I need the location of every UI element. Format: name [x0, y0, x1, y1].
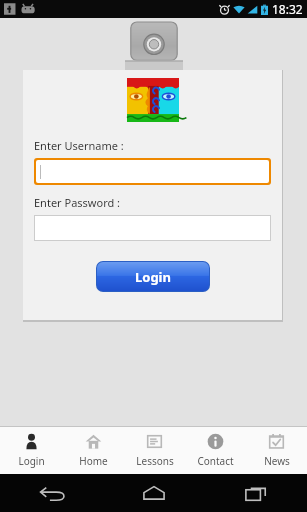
- button[interactable]: Login: [97, 262, 209, 291]
- staticText: Enter Username :: [34, 138, 124, 153]
- staticText: Home: [79, 454, 108, 468]
- button[interactable]: Lessons: [124, 427, 185, 474]
- staticText: Login: [18, 454, 45, 468]
- staticText: News: [264, 454, 290, 468]
- button[interactable]: Home: [103, 474, 205, 512]
- button[interactable]: Login: [0, 427, 62, 474]
- staticText: Contact: [197, 454, 234, 468]
- button[interactable]: Home: [62, 427, 124, 474]
- button[interactable]: Contact: [185, 427, 246, 474]
- button[interactable]: [36, 160, 269, 183]
- staticText: Login: [135, 268, 171, 286]
- staticText: Enter Password :: [34, 195, 121, 210]
- button[interactable]: News: [246, 427, 307, 474]
- button[interactable]: Recent apps: [205, 474, 307, 512]
- button[interactable]: Back: [0, 474, 103, 512]
- staticText: 18:32: [272, 1, 303, 17]
- staticText: Lessons: [136, 454, 174, 468]
